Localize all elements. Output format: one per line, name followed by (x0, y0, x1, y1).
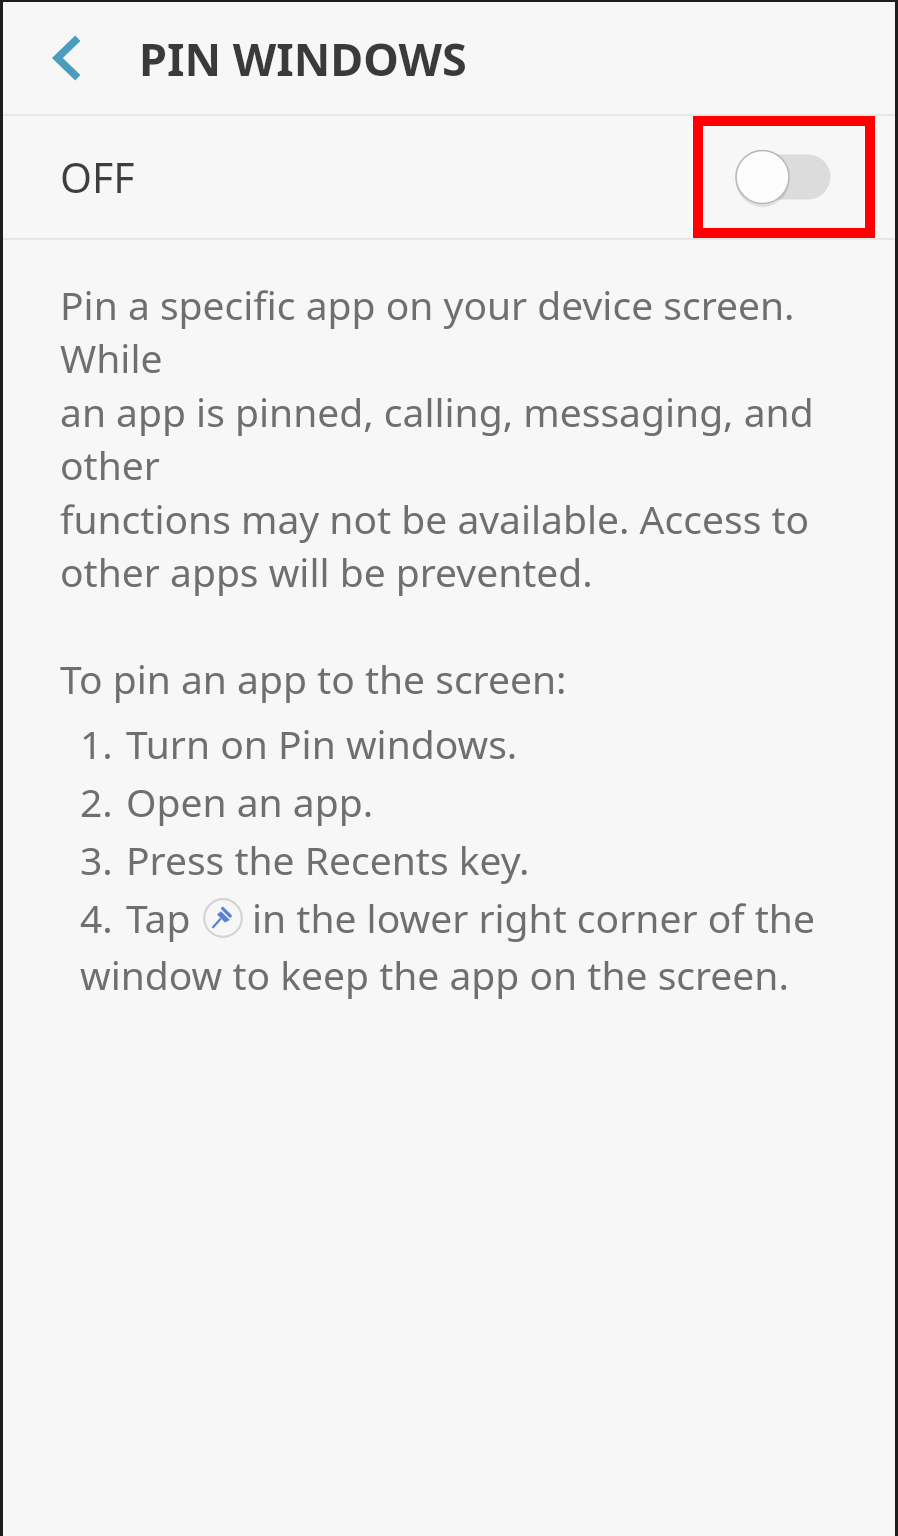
staticText: OFF (60, 149, 135, 205)
staticText: Pin a specific app on your device screen… (60, 278, 865, 385)
staticText: 1. (80, 717, 113, 770)
staticText: PIN WINDOWS (139, 28, 467, 89)
staticText: an app is pinned, calling, messaging, an… (60, 385, 865, 492)
staticText: Tap (126, 891, 191, 944)
staticText: Open an app. (126, 775, 374, 828)
button[interactable]: Pin windows switch, off (730, 147, 838, 207)
staticText: other apps will be prevented. (60, 545, 593, 598)
button[interactable]: OFF (3, 116, 895, 238)
staticText: 4. (80, 891, 113, 944)
staticText: functions may not be available. Access t… (60, 492, 810, 545)
staticText: To pin an app to the screen: (60, 652, 567, 705)
staticText: Turn on Pin windows. (126, 717, 518, 770)
staticText: window to keep the app on the screen. (80, 948, 789, 1001)
staticText: in the lower right corner of the (252, 891, 815, 944)
button[interactable]: Back (33, 23, 103, 93)
staticText: 3. (80, 833, 113, 886)
staticText: 2. (80, 775, 113, 828)
staticText: Press the Recents key. (126, 833, 530, 886)
